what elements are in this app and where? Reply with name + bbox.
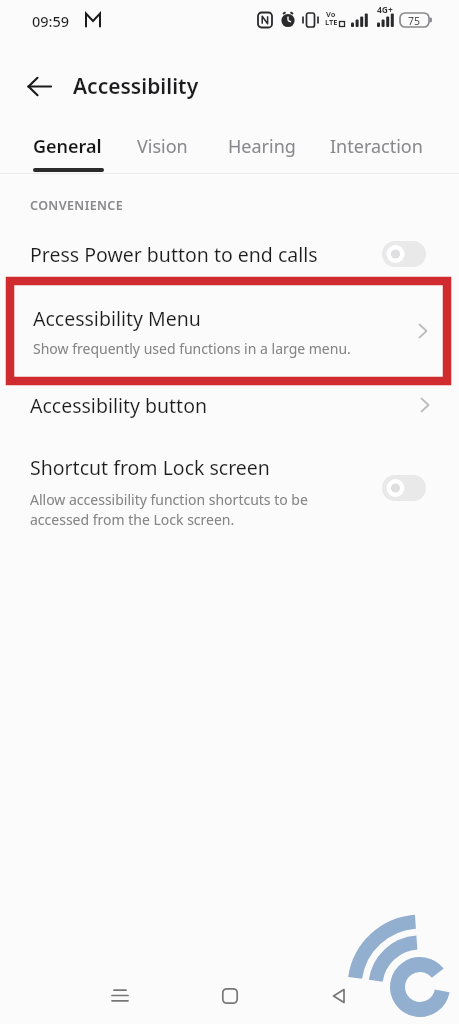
button[interactable] bbox=[382, 241, 426, 267]
button[interactable]: Accessibility bbox=[0, 62, 459, 110]
button[interactable]: Accessibility Menu bbox=[33, 305, 351, 358]
staticText: 09:59 bbox=[32, 11, 70, 31]
staticText: Accessibility Menu bbox=[33, 305, 201, 332]
staticText: 4G+ bbox=[377, 4, 393, 16]
staticText: Interaction bbox=[330, 134, 423, 159]
staticText: Allow accessibility function shortcuts t… bbox=[30, 490, 308, 530]
staticText: Shortcut from Lock screen bbox=[30, 454, 270, 481]
staticText: Vision bbox=[137, 134, 188, 159]
button[interactable]: Hearing bbox=[228, 134, 296, 159]
button[interactable]: Press Power button to end calls bbox=[0, 230, 459, 278]
staticText: 75 bbox=[408, 14, 421, 28]
button[interactable]: Shortcut from Lock screen bbox=[0, 448, 459, 532]
staticText: Press Power button to end calls bbox=[30, 241, 318, 268]
button[interactable] bbox=[315, 976, 363, 1016]
button[interactable] bbox=[382, 475, 426, 501]
staticText: CONVENIENCE bbox=[30, 197, 124, 214]
staticText: General bbox=[33, 134, 102, 159]
button[interactable]: Vision bbox=[137, 134, 188, 159]
button[interactable]: Accessibility button bbox=[0, 381, 459, 429]
button[interactable]: Interaction bbox=[330, 134, 423, 159]
staticText: Show frequently used functions in a larg… bbox=[33, 339, 351, 358]
button[interactable] bbox=[206, 976, 254, 1016]
staticText: Accessibility button bbox=[30, 392, 208, 419]
staticText: Vo bbox=[326, 9, 336, 19]
button[interactable]: General bbox=[33, 134, 102, 159]
staticText: Accessibility bbox=[73, 72, 199, 101]
staticText: LTE bbox=[325, 17, 338, 27]
button[interactable] bbox=[96, 976, 144, 1016]
staticText: Hearing bbox=[228, 134, 296, 159]
